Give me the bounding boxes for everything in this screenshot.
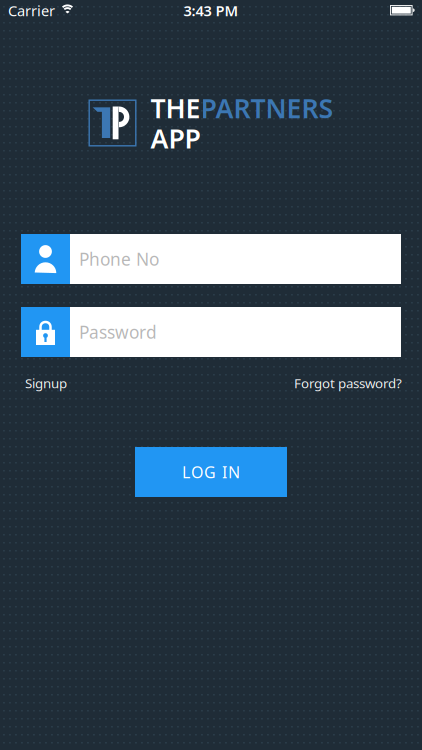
staticText: LOG IN (182, 461, 240, 483)
staticText: Carrier (8, 1, 55, 20)
staticText: THE (150, 90, 200, 125)
button[interactable]: LOG IN (135, 447, 287, 497)
button[interactable]: Forgot password? (294, 374, 402, 392)
staticText: PARTNERS (200, 90, 333, 125)
staticText: Phone No (79, 247, 159, 270)
button[interactable]: Signup (25, 374, 67, 392)
staticText: Signup (25, 374, 67, 392)
staticText: 3:43 PM (183, 1, 238, 20)
staticText: APP (150, 120, 200, 156)
staticText: Forgot password? (294, 374, 402, 392)
staticText: Password (79, 320, 157, 343)
